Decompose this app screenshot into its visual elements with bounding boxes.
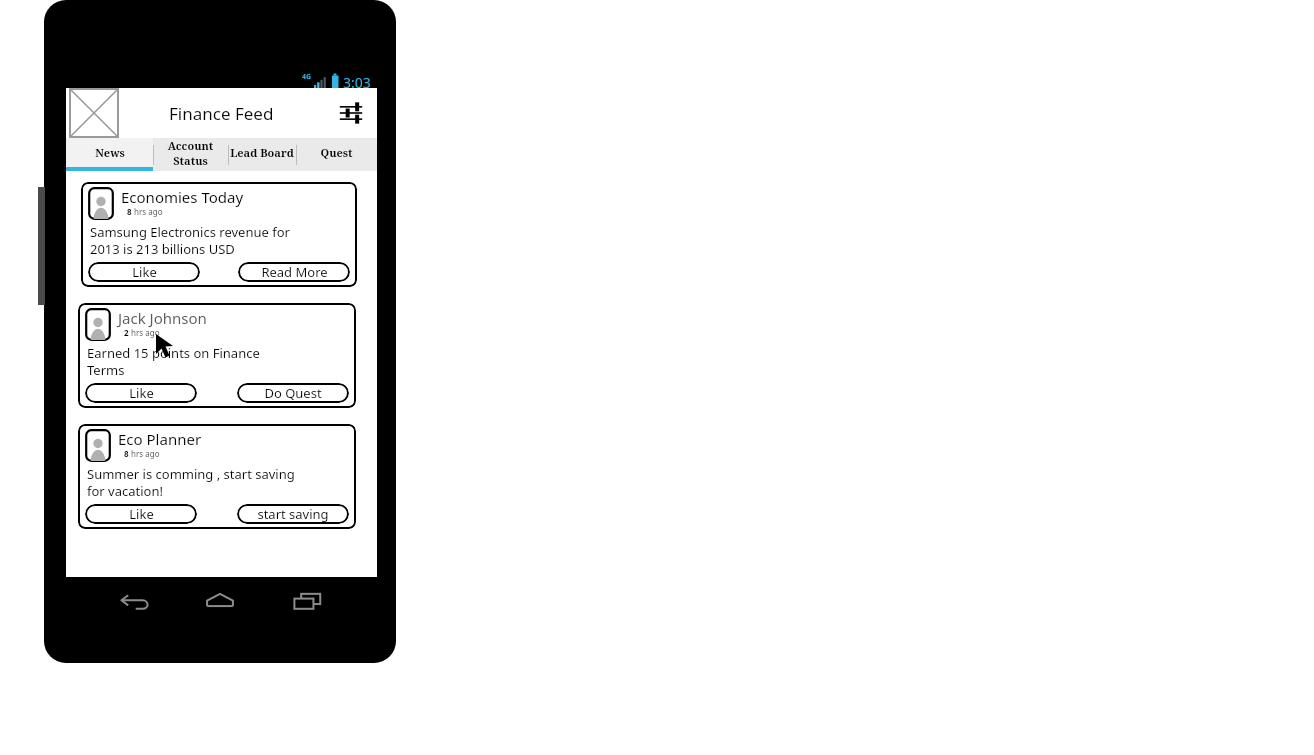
staticText: Eco Planner	[118, 429, 202, 449]
staticText: start saving	[257, 505, 329, 523]
staticText: Economies Today	[121, 187, 244, 207]
staticText: Jack Johnson	[118, 308, 207, 328]
staticText: Terms	[87, 361, 125, 379]
button[interactable]: News	[66, 138, 153, 171]
staticText: 2	[124, 327, 129, 338]
button[interactable]: Like	[88, 262, 200, 282]
button[interactable]: Like	[85, 383, 197, 403]
staticText: 8	[124, 448, 129, 459]
staticText: Do Quest	[264, 384, 322, 402]
button[interactable]: start saving	[237, 504, 349, 524]
button[interactable]: Like	[85, 504, 197, 524]
staticText: hrs ago	[132, 206, 163, 217]
button[interactable]: Read More	[238, 262, 350, 282]
button[interactable]: Account Status	[153, 138, 228, 171]
staticText: News	[95, 145, 125, 160]
button[interactable]: Back	[118, 585, 152, 619]
staticText: Finance Feed	[169, 102, 274, 125]
staticText: hrs ago	[129, 448, 160, 459]
staticText: hrs ago	[129, 327, 160, 338]
staticText: Account Status	[153, 138, 228, 168]
button[interactable]: Lead Board	[228, 138, 296, 171]
button[interactable]: App logo	[69, 88, 119, 138]
staticText: 8	[127, 206, 132, 217]
button[interactable]: Settings	[337, 99, 365, 127]
staticText: 4G	[302, 72, 312, 82]
button[interactable]: Economies Today	[81, 182, 357, 287]
button[interactable]: Do Quest	[237, 383, 349, 403]
staticText: Samsung Electronics revenue for	[90, 223, 290, 241]
button[interactable]: Eco Planner	[78, 424, 356, 529]
button[interactable]: Recent apps	[291, 585, 325, 619]
staticText: for vacation!	[87, 482, 163, 500]
staticText: Quest	[320, 145, 353, 160]
staticText: Lead Board	[230, 145, 294, 160]
staticText: Read More	[261, 263, 328, 281]
staticText: Like	[129, 505, 154, 523]
button[interactable]: Quest	[296, 138, 377, 171]
staticText: Like	[129, 384, 154, 402]
staticText: Summer is comming , start saving	[87, 465, 295, 483]
button[interactable]: Jack Johnson	[78, 303, 356, 408]
staticText: 3:03	[343, 73, 371, 92]
staticText: 2013 is 213 billions USD	[90, 240, 235, 258]
staticText: Like	[132, 263, 157, 281]
staticText: Earned 15 points on Finance	[87, 344, 260, 362]
button[interactable]: Home	[203, 585, 237, 619]
